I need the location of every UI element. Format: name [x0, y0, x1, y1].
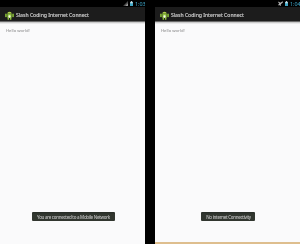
- button[interactable]: No internet Connectivity: [201, 212, 255, 221]
- staticText: Slash Coding Internet Connect: [16, 12, 89, 19]
- other: App bar: [0, 7, 145, 21]
- staticText: 1:04: [290, 0, 300, 7]
- staticText: No internet Connectivity: [206, 214, 251, 220]
- staticText: Hello world!: [6, 28, 30, 34]
- staticText: Hello world!: [161, 28, 185, 34]
- button[interactable]: You are connected to a Mobile Network: [32, 212, 115, 221]
- staticText: You are connected to a Mobile Network: [37, 214, 110, 220]
- staticText: 1:03: [135, 0, 146, 7]
- staticText: Slash Coding Internet Connect: [171, 12, 244, 19]
- other: App bar: [155, 7, 300, 21]
